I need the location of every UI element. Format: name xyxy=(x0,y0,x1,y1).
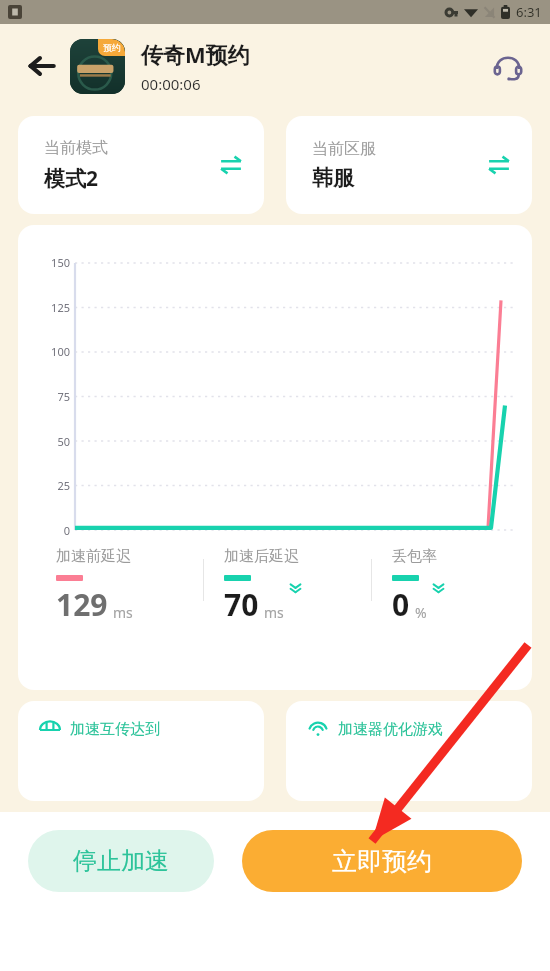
staticText: 50 xyxy=(57,434,70,449)
staticText: ms xyxy=(113,603,133,622)
button[interactable]: 当前区服 xyxy=(286,116,532,214)
button[interactable]: 当前模式 xyxy=(18,116,264,214)
button[interactable]: 加速互传达到 xyxy=(18,701,264,801)
staticText: 75 xyxy=(57,389,70,404)
staticText: 125 xyxy=(51,300,70,315)
staticText: 129 xyxy=(56,584,108,625)
staticText: 加速前延迟 xyxy=(56,547,131,566)
staticText: 丢包率 xyxy=(392,547,437,566)
staticText: ms xyxy=(264,603,284,622)
staticText: 当前模式 xyxy=(44,138,108,158)
button[interactable]: Customer service xyxy=(486,44,530,88)
staticText: 韩服 xyxy=(312,165,354,191)
staticText: 100 xyxy=(51,344,70,359)
button[interactable]: 停止加速 xyxy=(28,830,214,892)
staticText: 加速器优化游戏 xyxy=(338,720,443,739)
staticText: 25 xyxy=(57,478,70,493)
staticText: 停止加速 xyxy=(73,846,169,876)
staticText: 0 xyxy=(63,523,70,538)
staticText: % xyxy=(415,603,427,622)
staticText: 6:31 xyxy=(516,3,542,21)
button[interactable]: 立即预约 xyxy=(242,830,522,892)
button[interactable]: 加速器优化游戏 xyxy=(286,701,532,801)
staticText: 当前区服 xyxy=(312,139,376,159)
staticText: 150 xyxy=(51,255,70,270)
staticText: 00:00:06 xyxy=(141,74,201,94)
staticText: 传奇M预约 xyxy=(141,39,250,69)
staticText: 0 xyxy=(392,584,410,625)
staticText: 加速后延迟 xyxy=(224,547,299,566)
staticText: 预约 xyxy=(103,42,121,53)
staticText: 立即预约 xyxy=(332,846,432,877)
staticText: 模式2 xyxy=(44,164,99,193)
button[interactable]: Back xyxy=(20,44,64,88)
staticText: 70 xyxy=(224,584,259,625)
staticText: 加速互传达到 xyxy=(70,720,160,739)
